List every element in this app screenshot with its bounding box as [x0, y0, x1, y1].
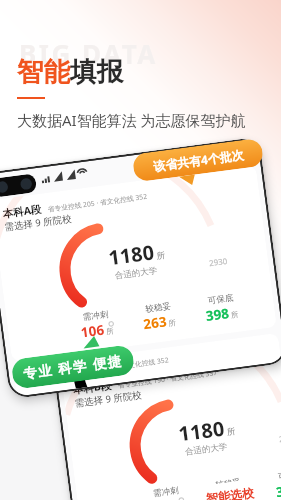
staticText: 106 [80, 320, 106, 341]
staticText: 该省共有4个批次 [152, 146, 245, 174]
staticText: 本科A段 [2, 202, 42, 221]
staticText: 1180 [107, 238, 156, 271]
button[interactable]: 智能选校 [191, 477, 269, 500]
staticText: 所 [105, 326, 115, 336]
staticText: 2930 [208, 255, 228, 268]
staticText: 可保底 [277, 468, 281, 483]
staticText: 填报 [70, 55, 123, 88]
staticText: 省专业控线 205 · 省文化控线 352 [47, 192, 148, 214]
staticText: 本科B段 [72, 378, 112, 397]
staticText: 智能 [17, 55, 70, 88]
staticText: 398 [275, 480, 281, 500]
staticText: 398 [205, 304, 231, 325]
staticText: 需冲刺 [82, 309, 109, 323]
staticText: 所 [238, 494, 247, 500]
staticText: 需冲刺 [152, 485, 180, 499]
staticText: 263 [142, 312, 168, 333]
staticText: 大数据AI智能算法 为志愿保驾护航 [17, 110, 246, 130]
staticText: 较稳妥 [215, 477, 242, 491]
staticText: 需选择 9 所院校 [4, 212, 73, 234]
staticText: 较稳妥 [145, 301, 172, 315]
staticText: 可保底 [207, 292, 234, 307]
staticText: 所 [168, 318, 177, 328]
staticText: 需选择 9 所院校 [74, 388, 143, 410]
staticText: 1180 [177, 414, 226, 447]
staticText: 2930 [278, 431, 281, 444]
staticText: 所 [230, 310, 239, 320]
staticText: 专业 科学 便捷 [22, 351, 125, 382]
button[interactable]: 该省共有4个批次 [132, 138, 266, 198]
staticText: 本科A段 [24, 369, 64, 384]
staticText: 合适的大学 [114, 265, 158, 282]
staticText: 合适的大学 [184, 441, 228, 458]
staticText: 省专业控线 190 · 省文化控线 337 [117, 368, 218, 390]
staticText: 所 [156, 250, 166, 262]
staticText: 263 [212, 488, 238, 500]
staticText: BIG DATA [19, 36, 158, 71]
staticText: 省专业控线 205 · 省文化控线 352 [68, 355, 170, 377]
staticText: 智能选校 [205, 485, 255, 500]
button[interactable]: 专业 科学 便捷 [9, 330, 135, 390]
staticText: 所 [226, 426, 236, 438]
